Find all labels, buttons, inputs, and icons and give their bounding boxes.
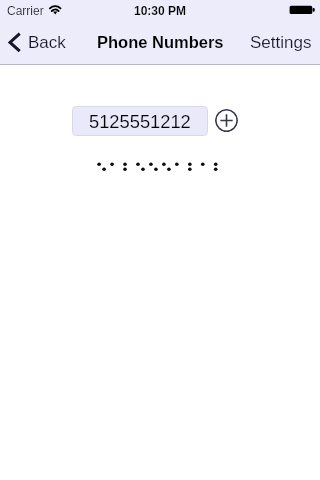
button[interactable]: Add phone number	[215, 109, 238, 132]
other: Wi-Fi signal	[46, 2, 64, 18]
staticText: Carrier	[7, 4, 44, 17]
staticText: 10:30 PM	[134, 4, 187, 17]
staticText: 5125551212	[89, 111, 191, 131]
button[interactable]: Settings	[243, 22, 320, 62]
staticText: Back	[28, 33, 66, 52]
button[interactable]: 5125551212	[72, 106, 208, 136]
button[interactable]: Back	[2, 22, 74, 62]
staticText: Phone Numbers	[97, 33, 224, 51]
staticText: Settings	[250, 33, 312, 52]
